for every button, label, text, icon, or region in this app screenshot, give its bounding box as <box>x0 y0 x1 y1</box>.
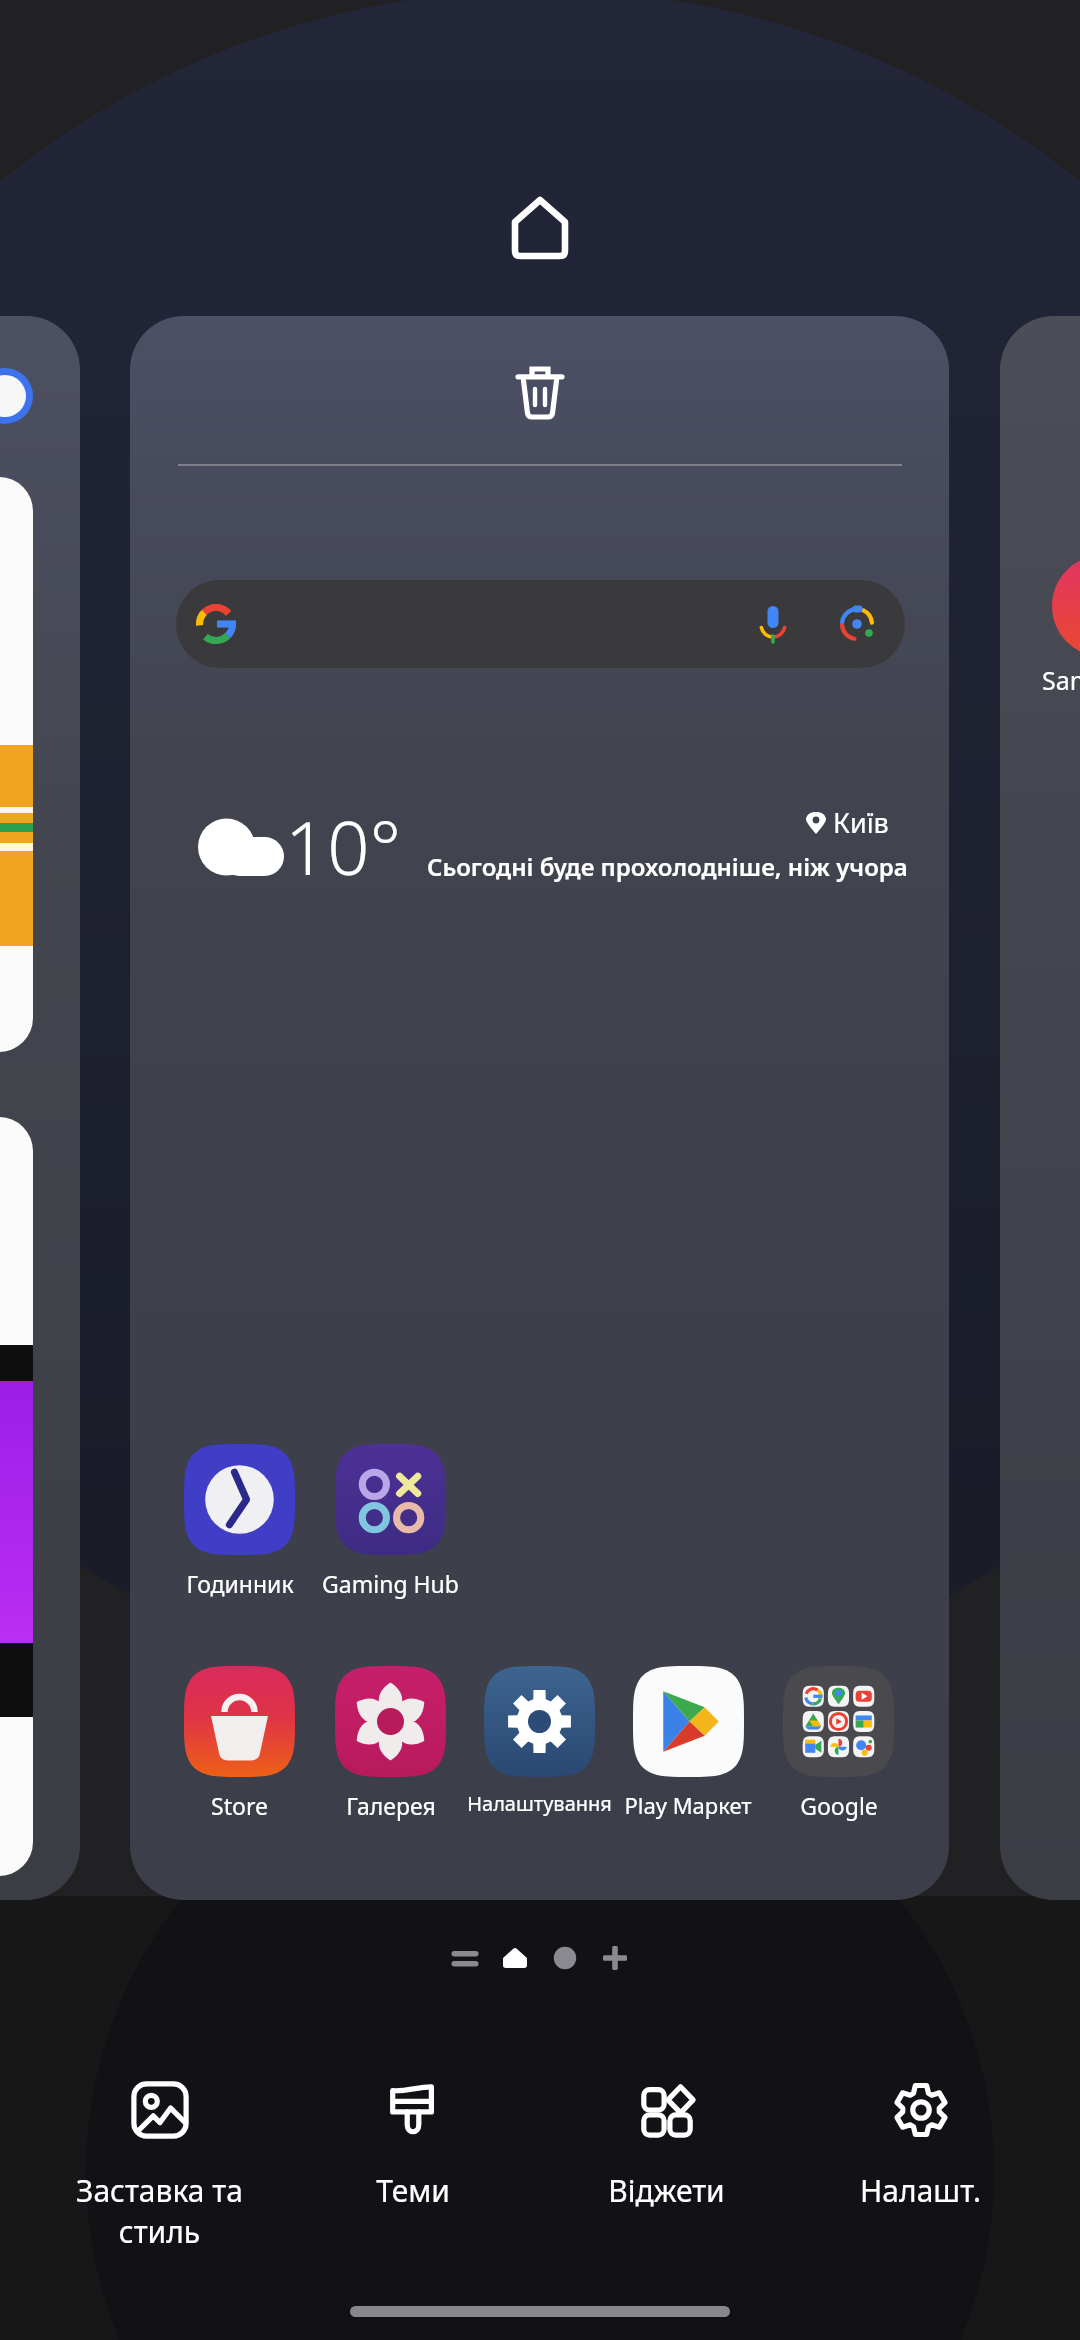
button[interactable]: Google <box>738 1666 938 1846</box>
button[interactable]: Налаштування <box>439 1666 639 1846</box>
staticText: Налаштування <box>467 1790 612 1817</box>
button[interactable]: Remove page <box>504 358 576 430</box>
button[interactable]: Годинник <box>139 1444 339 1624</box>
button[interactable]: Store <box>139 1666 339 1846</box>
staticText: Store <box>211 1790 268 1821</box>
button[interactable]: All pages <box>445 1938 485 1978</box>
button[interactable]: Теми <box>288 2081 538 2296</box>
button[interactable]: Page three <box>545 1938 585 1978</box>
staticText: Налашт. <box>860 2170 981 2211</box>
button[interactable]: Віджети <box>541 2081 791 2296</box>
button[interactable]: Галерея <box>290 1666 490 1846</box>
button[interactable]: Home page <box>495 1938 535 1978</box>
staticText: Gaming Hub <box>322 1568 459 1599</box>
button[interactable]: Налашт. <box>795 2081 1045 2296</box>
staticText: Sam <box>1042 663 1080 697</box>
button[interactable]: Заставка та стиль <box>34 2081 284 2296</box>
staticText: Заставка та стиль <box>76 2170 243 2252</box>
staticText: 10° <box>285 796 402 897</box>
staticText: Теми <box>376 2170 450 2211</box>
staticText: Годинник <box>186 1568 294 1599</box>
button[interactable]: Gaming Hub <box>290 1444 490 1624</box>
button[interactable]: Home screen <box>502 187 578 265</box>
button[interactable]: Search <box>176 580 905 668</box>
staticText: Play Маркет <box>624 1790 752 1820</box>
button[interactable]: 10° <box>130 784 949 914</box>
staticText: Київ <box>833 804 889 841</box>
staticText: Google <box>800 1790 878 1821</box>
staticText: Віджети <box>608 2170 725 2211</box>
staticText: Сьогодні буде прохолодніше, ніж учора <box>427 850 908 883</box>
staticText: Галерея <box>346 1790 436 1821</box>
button[interactable]: Add page <box>595 1938 635 1978</box>
button[interactable]: Play Маркет <box>588 1666 788 1846</box>
